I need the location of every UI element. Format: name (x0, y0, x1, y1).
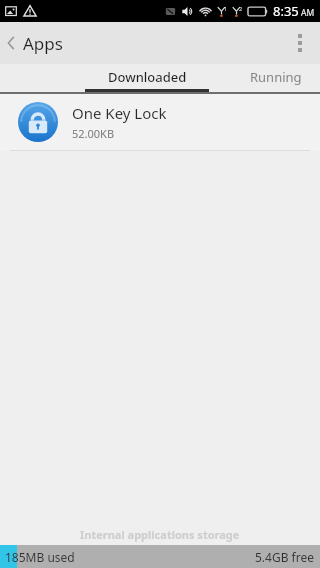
staticText: 2 (239, 5, 243, 12)
staticText: Downloaded (108, 68, 187, 86)
button[interactable]: Running (215, 64, 320, 94)
staticText: Internal applications storage (80, 527, 240, 542)
staticText: 8:35 (273, 2, 299, 20)
button[interactable]: Downloaded (79, 64, 215, 94)
staticText: One Key Lock (72, 103, 167, 123)
button[interactable]: More options (280, 22, 320, 64)
staticText: AM (301, 7, 315, 19)
staticText: 5.4GB free (255, 549, 314, 565)
button[interactable]: One Key Lock (0, 94, 320, 150)
staticText: 52.00KB (72, 126, 115, 141)
button[interactable]: Apps (0, 22, 73, 64)
staticText: 185MB used (5, 549, 75, 565)
staticText: 1 (224, 5, 228, 12)
staticText: Running (250, 68, 302, 86)
staticText: Apps (23, 32, 63, 55)
